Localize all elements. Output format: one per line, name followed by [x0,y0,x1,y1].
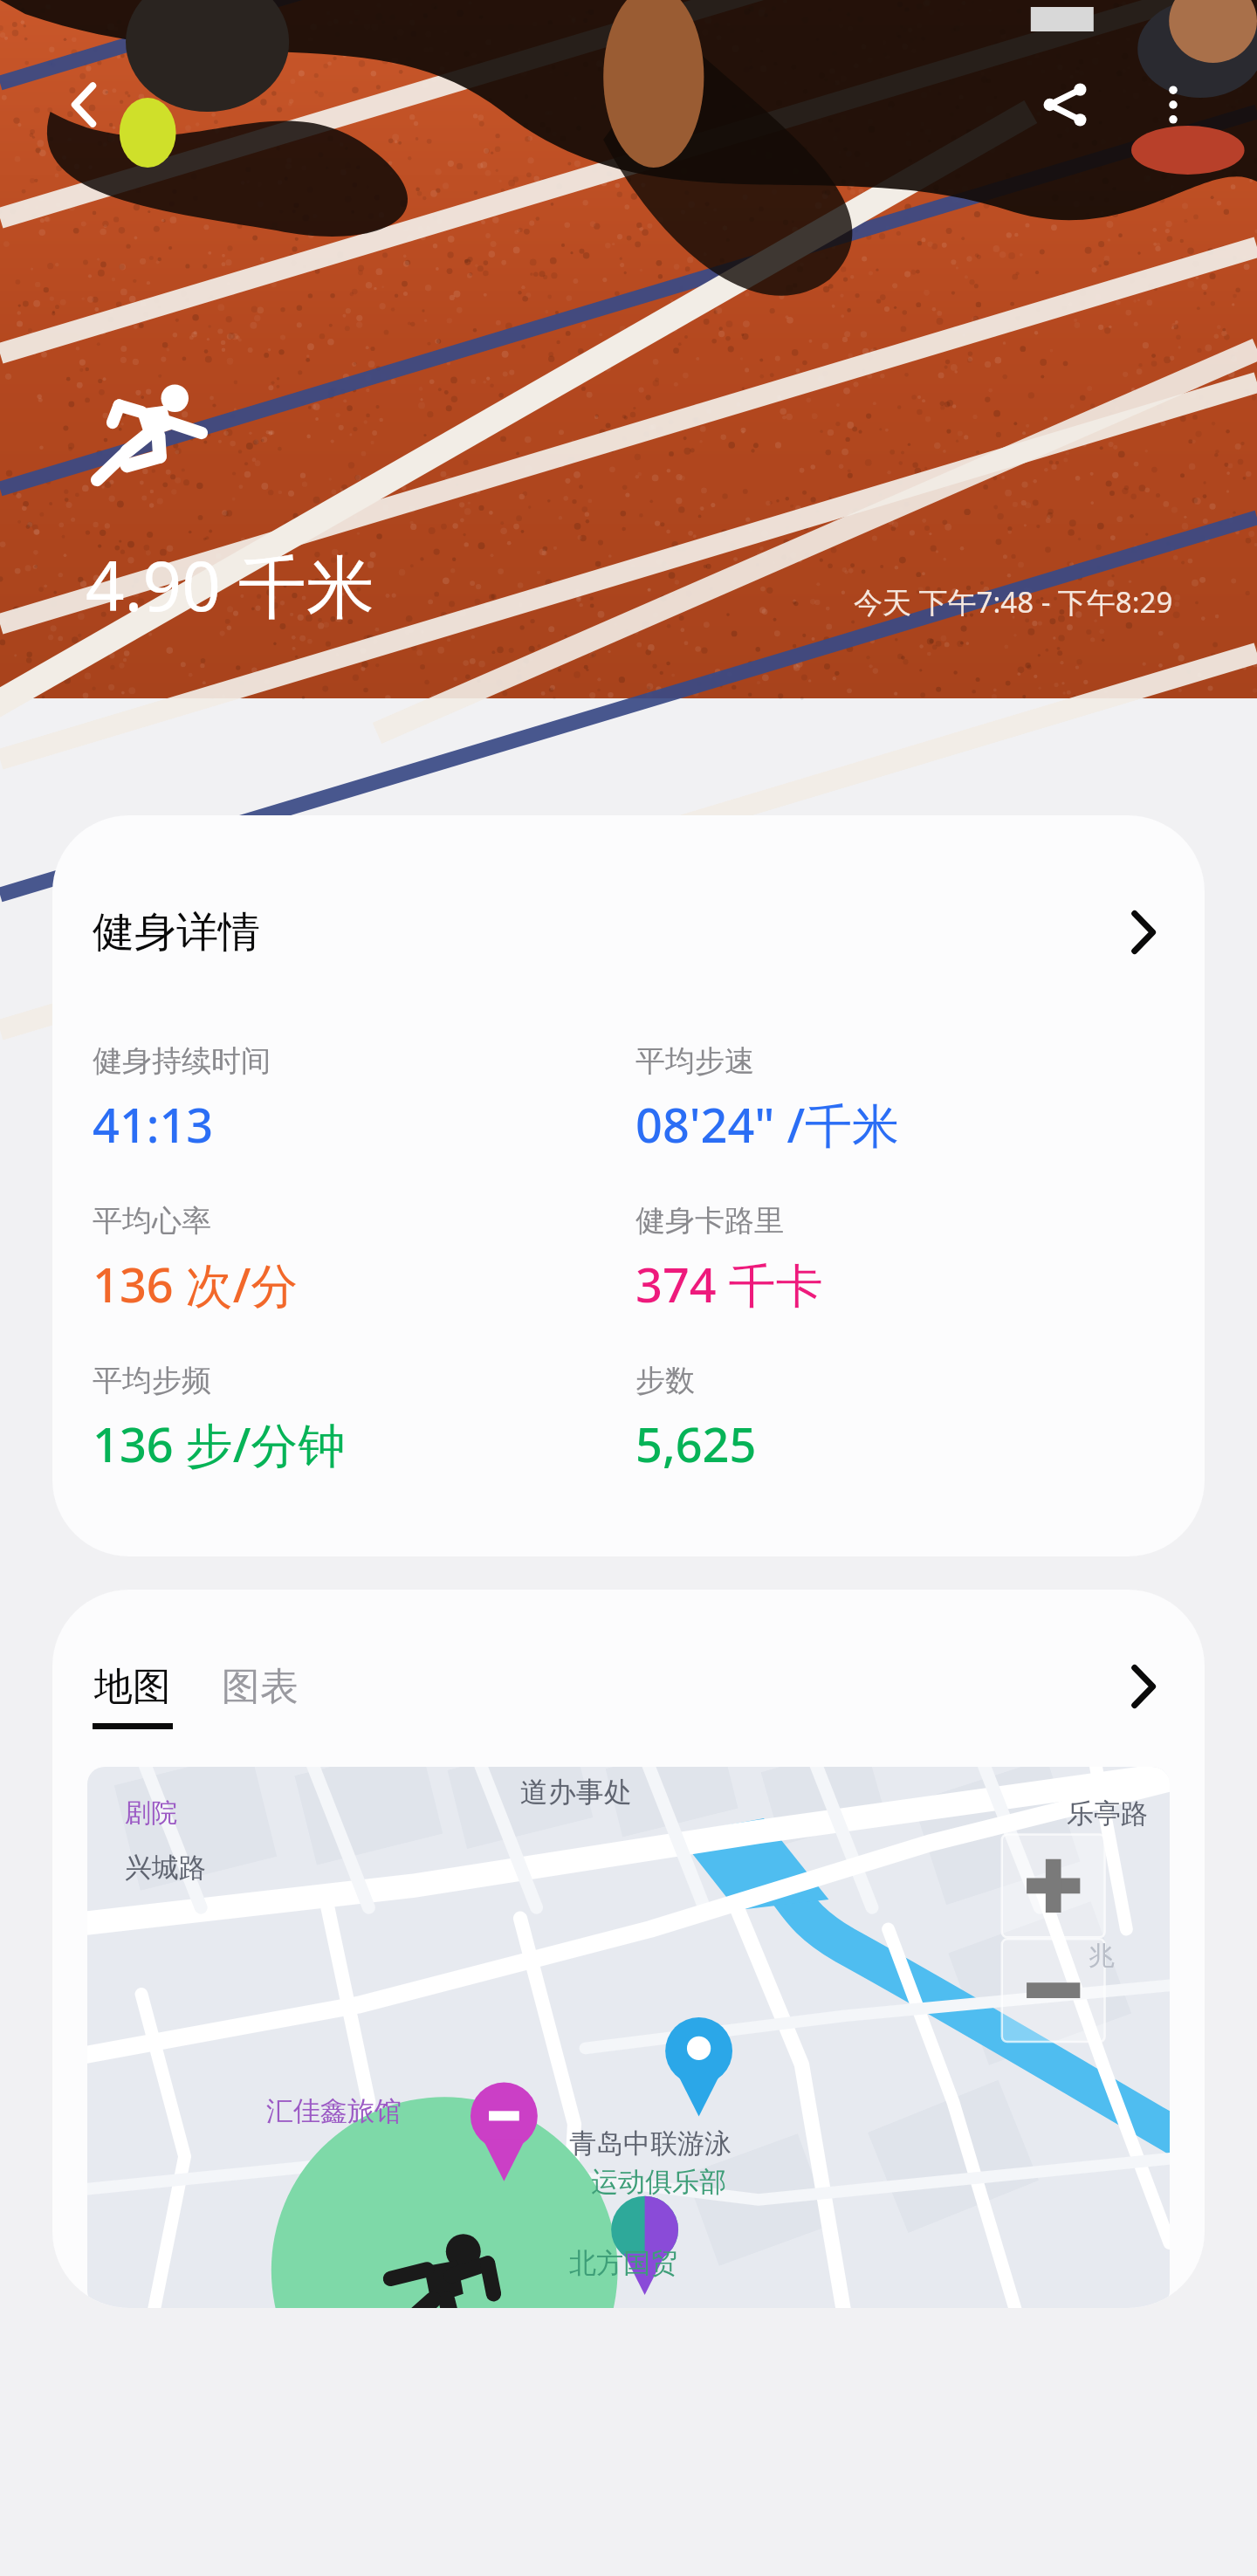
staticText: 地图 [94,1663,171,1711]
staticText: 健身卡路里 [635,1202,784,1240]
button[interactable]: Open map [1117,1661,1168,1712]
staticText: 图表 [222,1663,299,1711]
staticText: 平均心率 [93,1202,211,1240]
staticText: 汇佳鑫旅馆 [266,2094,402,2128]
staticText: 步数 [635,1362,695,1399]
button[interactable]: 健身详情 [52,815,1205,997]
staticText: 08'24" /千米 [635,1092,900,1157]
button[interactable]: Share [1016,56,1114,154]
staticText: 健身持续时间 [93,1042,271,1080]
staticText: 5,625 [635,1412,757,1476]
staticText: 乐亭路 [1067,1796,1148,1831]
staticText: 剧院 [125,1796,177,1830]
staticText: 运动俱乐部 [591,2165,726,2199]
staticText: 374 千卡 [635,1252,823,1316]
staticText: 平均步频 [93,1362,211,1399]
staticText: 青岛中联游泳 [569,2126,732,2160]
staticText: 今天 下午7:48 - 下午8:29 [854,582,1173,622]
staticText: 136 步/分钟 [93,1412,346,1476]
staticText: 健身详情 [93,906,260,958]
button[interactable]: 地图 [93,1663,180,1729]
staticText: 136 次/分 [93,1252,299,1316]
staticText: 41:13 [93,1092,214,1157]
staticText: 北方国贸 [569,2246,677,2280]
staticText: 道办事处 [520,1775,632,1810]
staticText: 兆 [1089,1940,1115,1973]
button[interactable]: More options [1124,56,1222,154]
staticText: 兴城路 [125,1851,206,1885]
staticText: 4.90 千米 [86,539,375,632]
button[interactable]: Back [35,56,133,154]
button[interactable]: Route map [87,1767,1170,2308]
button[interactable]: 图表 [222,1663,299,1729]
staticText: 平均步速 [635,1042,754,1080]
